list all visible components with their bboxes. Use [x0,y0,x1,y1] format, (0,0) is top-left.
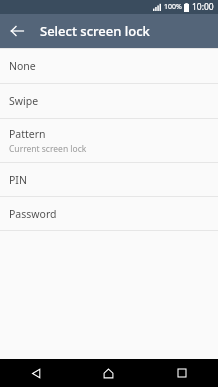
button[interactable]: Swipe [0,84,218,118]
button[interactable]: None [0,49,218,83]
staticText: Swipe [9,94,39,108]
staticText: Pattern [9,127,46,141]
button[interactable]: Navigate up [0,14,34,48]
button[interactable]: PIN [0,163,218,196]
staticText: 100% [164,2,182,12]
staticText: Current screen lock [9,143,87,155]
staticText: Password [9,207,57,221]
button[interactable]: Recent apps [145,359,218,387]
staticText: 10:00 [192,1,214,13]
button[interactable]: Back [0,359,72,387]
staticText: Select screen lock [40,22,150,40]
button[interactable]: Home [72,359,145,387]
button[interactable]: Password [0,197,218,230]
staticText: PIN [9,173,27,187]
button[interactable]: Pattern [0,119,218,162]
staticText: None [9,59,36,73]
